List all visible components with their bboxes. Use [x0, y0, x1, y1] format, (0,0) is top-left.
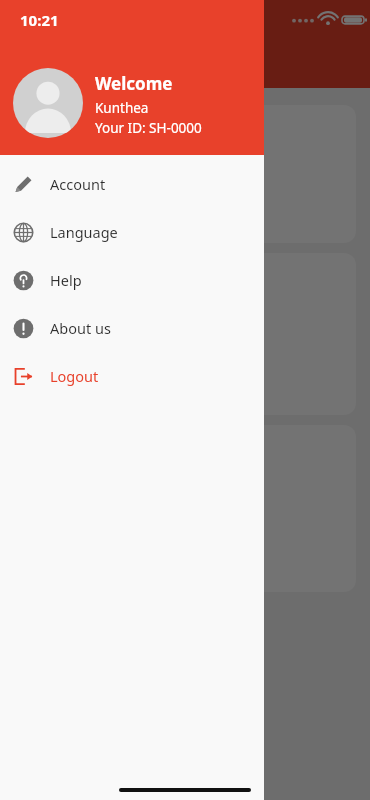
staticText: Account	[50, 174, 106, 194]
staticText: 10:21	[20, 10, 59, 30]
staticText: Welcome	[95, 72, 173, 95]
button[interactable]	[0, 0, 370, 800]
button[interactable]: Logout	[0, 352, 264, 400]
staticText: Kunthea	[95, 99, 149, 117]
button[interactable]: About us	[0, 304, 264, 352]
button[interactable]: Language	[0, 208, 264, 256]
staticText: Language	[50, 222, 118, 242]
button[interactable]: Profile photo	[13, 68, 83, 138]
staticText: Your ID: SH-0000	[95, 119, 202, 137]
button[interactable]	[14, 105, 356, 243]
button[interactable]: Payment	[14, 253, 356, 415]
staticText: 10:21	[20, 10, 59, 30]
staticText: Help	[50, 270, 82, 290]
button[interactable]: Help	[0, 256, 264, 304]
button[interactable]: Delivery	[14, 425, 356, 592]
staticText: About us	[50, 318, 111, 338]
staticText: Logout	[50, 366, 99, 386]
button: 10:21	[0, 0, 264, 800]
button[interactable]: Account	[0, 160, 264, 208]
